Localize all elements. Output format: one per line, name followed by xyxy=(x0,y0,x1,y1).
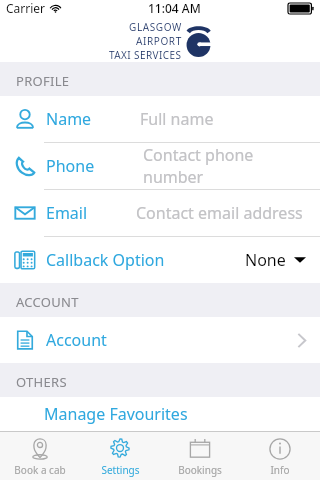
button[interactable]: Info xyxy=(240,433,320,480)
button[interactable]: Book a cab xyxy=(0,433,80,480)
button[interactable]: Phone xyxy=(0,143,320,189)
staticText: Full name xyxy=(140,108,214,130)
other: Book a cab xyxy=(28,437,52,461)
staticText: Email xyxy=(46,202,88,224)
staticText: GLASGOW xyxy=(129,20,182,34)
button[interactable]: Manage Favourites xyxy=(0,397,320,431)
staticText: Name xyxy=(46,108,92,130)
staticText: Settings xyxy=(101,463,140,477)
button[interactable]: Account xyxy=(0,317,320,363)
staticText: AIRPORT xyxy=(136,34,182,48)
staticText: Phone xyxy=(46,155,95,177)
button[interactable]: Bookings xyxy=(160,433,240,480)
button[interactable]: Settings xyxy=(80,433,160,480)
staticText: Contact phone number xyxy=(143,144,306,188)
button[interactable]: Callback Option xyxy=(0,237,320,283)
staticText: Contact email address xyxy=(136,202,303,224)
staticText: ACCOUNT xyxy=(16,293,79,311)
staticText: TAXI SERVICES xyxy=(109,48,182,62)
staticText: None xyxy=(245,249,286,271)
staticText: OTHERS xyxy=(16,373,67,391)
button[interactable]: Name xyxy=(0,96,320,142)
staticText: Callback Option xyxy=(46,249,165,271)
other: Settings xyxy=(108,437,132,461)
other: Info xyxy=(268,437,292,461)
staticText: Info xyxy=(270,463,290,477)
staticText: Book a cab xyxy=(14,463,66,477)
button[interactable]: Email xyxy=(0,190,320,236)
other: Bookings xyxy=(188,437,212,461)
staticText: Carrier xyxy=(6,0,46,16)
staticText: PROFILE xyxy=(16,72,70,90)
staticText: Account xyxy=(46,329,107,351)
staticText: Manage Favourites xyxy=(44,403,188,425)
staticText: Bookings xyxy=(178,463,222,477)
staticText: 11:04 AM xyxy=(148,0,201,16)
